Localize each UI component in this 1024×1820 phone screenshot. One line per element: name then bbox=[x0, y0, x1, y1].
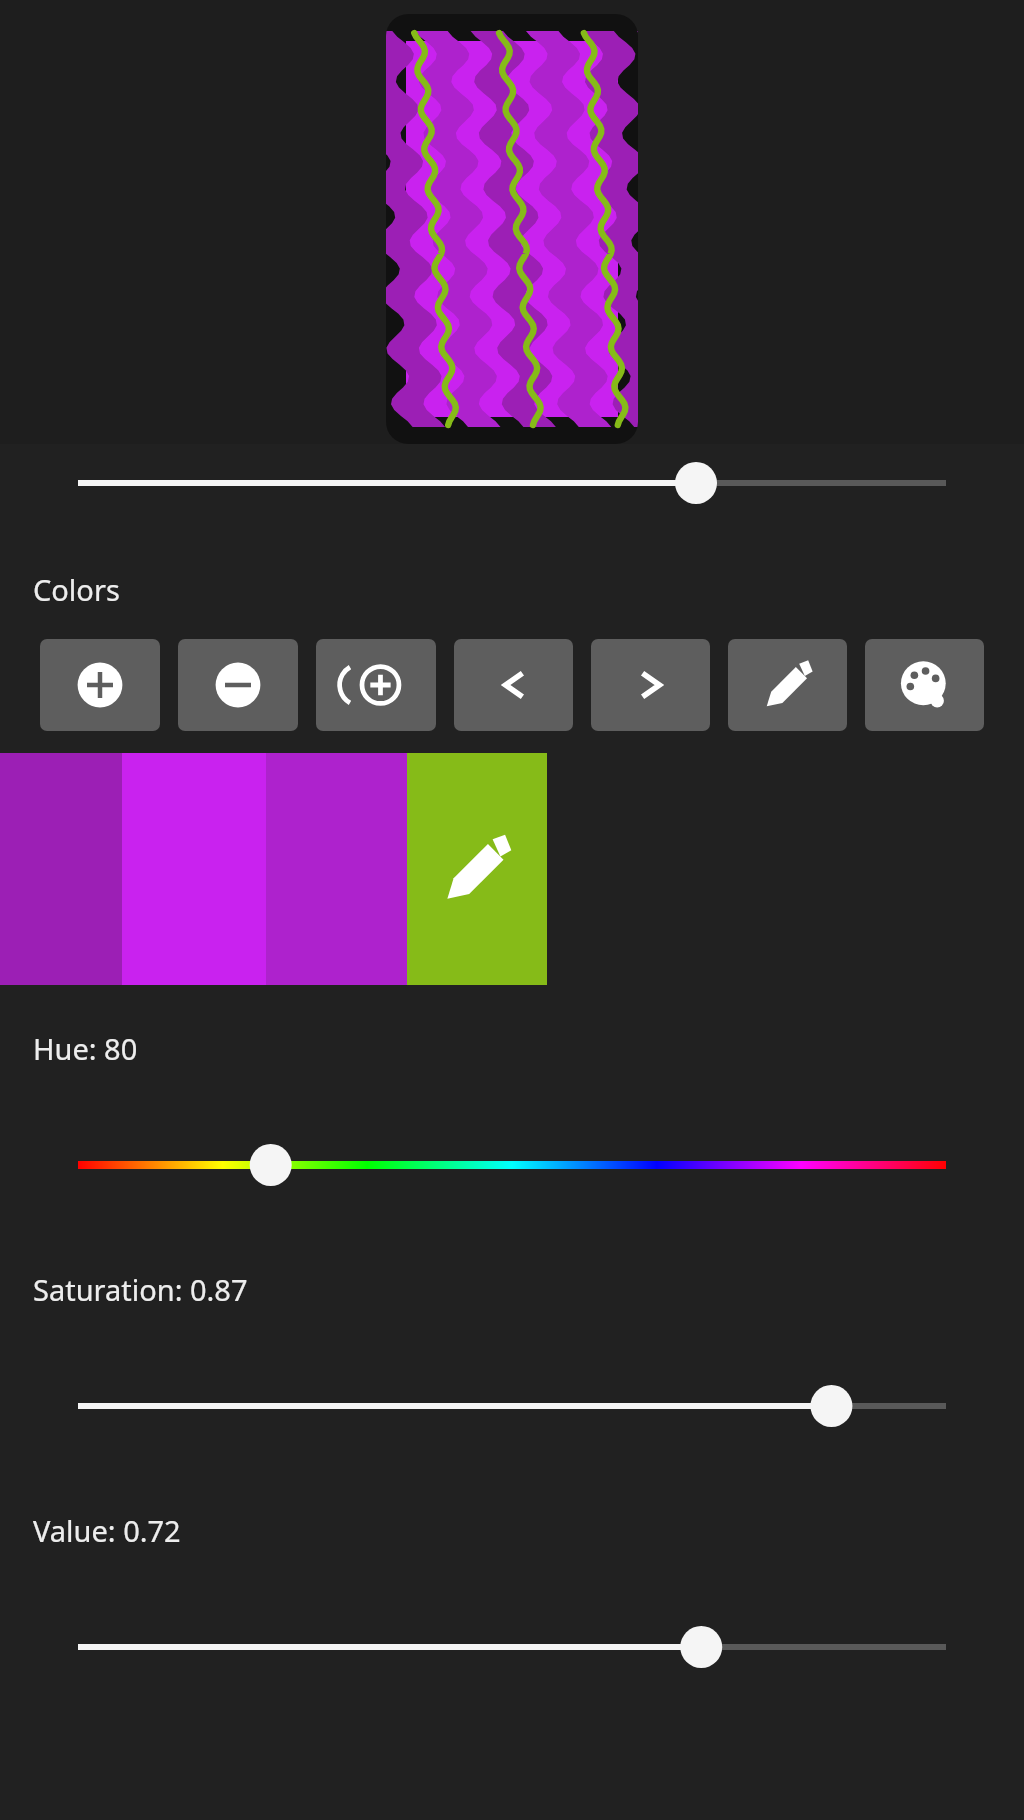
button[interactable]: Remove color bbox=[178, 639, 298, 731]
staticText: Hue: 80 bbox=[33, 1029, 138, 1068]
button[interactable]: Hue slider bbox=[0, 1138, 1024, 1192]
button[interactable]: Add color bbox=[40, 639, 160, 731]
button[interactable]: Palette bbox=[865, 639, 984, 731]
button[interactable]: Previous bbox=[454, 639, 573, 731]
button[interactable]: Slider bbox=[0, 1379, 1024, 1433]
staticText: Value: 0.72 bbox=[33, 1511, 181, 1550]
button[interactable]: Duplicate color bbox=[316, 639, 436, 731]
staticText: Saturation: 0.87 bbox=[33, 1270, 248, 1309]
button[interactable]: Slider bbox=[0, 456, 1024, 510]
button[interactable]: Next bbox=[591, 639, 710, 731]
button[interactable]: Slider bbox=[0, 1620, 1024, 1674]
staticText: Colors bbox=[33, 570, 120, 609]
button[interactable]: Edit color bbox=[728, 639, 847, 731]
button[interactable]: Color 4 selected bbox=[407, 753, 547, 985]
